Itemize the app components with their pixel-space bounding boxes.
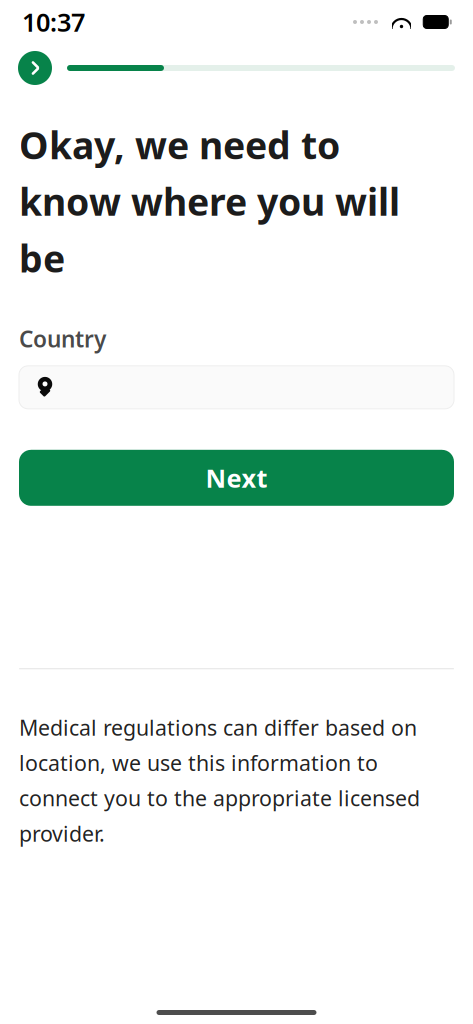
staticText: 10:37 — [22, 5, 85, 39]
button[interactable]: Back — [18, 51, 52, 85]
button[interactable]: Next — [19, 450, 454, 506]
staticText: Next — [205, 461, 267, 495]
staticText: Country — [19, 324, 106, 354]
staticText: Okay, we need to know where you will be — [19, 120, 400, 283]
staticText: Medical regulations can differ based on … — [19, 713, 420, 848]
